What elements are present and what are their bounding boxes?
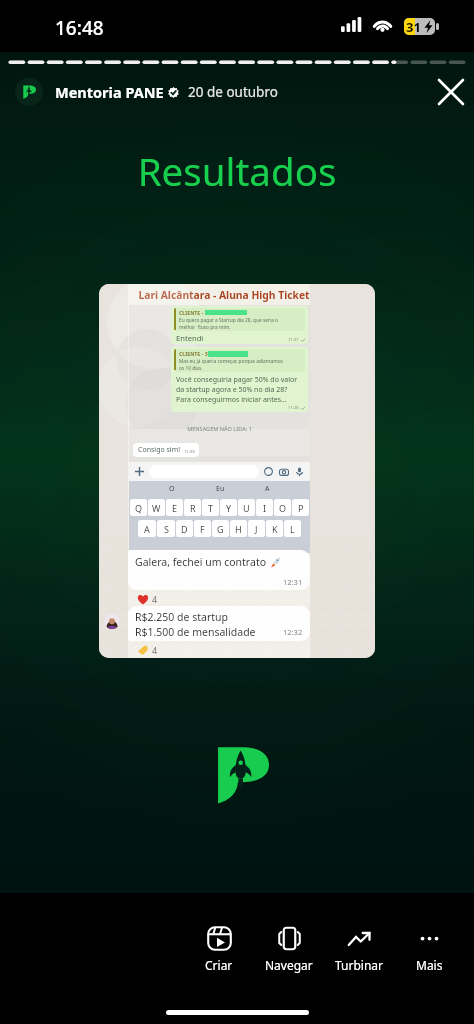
staticText: H <box>235 523 242 535</box>
staticText: 12:32 <box>283 627 303 637</box>
staticText: Eu quero pagar a Startup dia 28, que ser… <box>179 317 278 324</box>
staticText: 11:27 <box>288 337 299 343</box>
staticText: melhor fluxo pra mim. <box>179 324 231 331</box>
staticText: R <box>190 502 196 514</box>
staticText: MENSAGEM NÃO LIDA: 1 <box>129 425 310 433</box>
staticText: os 10 dias. <box>179 365 203 372</box>
staticText: O <box>279 502 287 514</box>
staticText: 4 <box>152 644 158 656</box>
staticText: CLIENTE - 3 <box>179 350 208 357</box>
staticText: 31 <box>406 18 421 35</box>
staticText: E <box>172 502 178 514</box>
staticText: Turbinar <box>335 957 384 973</box>
staticText: Mentoria PANE <box>55 82 164 102</box>
staticText: I <box>263 502 267 514</box>
staticText: R$2.250 de startup <box>135 610 228 624</box>
staticText: Mas eu já queria começar, porque adianta… <box>179 358 283 365</box>
staticText: U <box>243 502 250 514</box>
staticText: Galera, fechei um contrato <box>135 555 267 569</box>
staticText: Para conseguirmos iniciar antes... <box>176 395 287 405</box>
button[interactable]: Navegar <box>254 924 324 975</box>
staticText: F <box>200 523 205 535</box>
staticText: 11:28 <box>288 405 299 411</box>
staticText: L <box>290 523 295 535</box>
staticText: da startup agora e 50% no dia 28? <box>176 385 288 395</box>
staticText: K <box>272 523 278 535</box>
staticText: Mais <box>416 957 443 973</box>
button[interactable]: Fechar <box>431 72 471 112</box>
staticText: J <box>255 523 258 535</box>
staticText: Navegar <box>265 957 313 973</box>
staticText: Q <box>135 502 143 514</box>
staticText: Y <box>226 502 232 514</box>
staticText: W <box>152 502 161 514</box>
staticText: S <box>164 523 169 535</box>
staticText: Consigo sim! <box>138 445 181 455</box>
staticText: Eu <box>216 484 225 494</box>
staticText: CLIENTE - <box>179 309 205 316</box>
staticText: 11:33 <box>184 449 195 455</box>
staticText: 16:48 <box>55 15 104 41</box>
staticText: Você conseguiria pagar 50% do valor <box>176 375 298 385</box>
button[interactable]: Mentoria PANE <box>55 82 278 102</box>
button[interactable]: Mais <box>394 924 464 975</box>
staticText: Resultados <box>0 145 474 197</box>
staticText: R$1.500 de mensalidade <box>135 625 256 639</box>
staticText: Entendi <box>176 333 204 343</box>
staticText: 20 de outubro <box>188 83 278 101</box>
button[interactable]: Criar <box>184 924 254 975</box>
button[interactable]: Turbinar <box>324 924 394 975</box>
staticText: O <box>169 484 175 494</box>
staticText: P <box>298 502 304 514</box>
staticText: 12:31 <box>283 577 303 587</box>
staticText: Criar <box>205 957 233 973</box>
staticText: G <box>217 523 224 535</box>
staticText: A <box>144 523 150 535</box>
staticText: A <box>265 484 270 494</box>
staticText: Lari Alcântara - Aluna High Ticket <box>99 288 362 302</box>
staticText: T <box>208 502 214 514</box>
staticText: D <box>181 523 188 535</box>
staticText: 4 <box>152 593 158 605</box>
